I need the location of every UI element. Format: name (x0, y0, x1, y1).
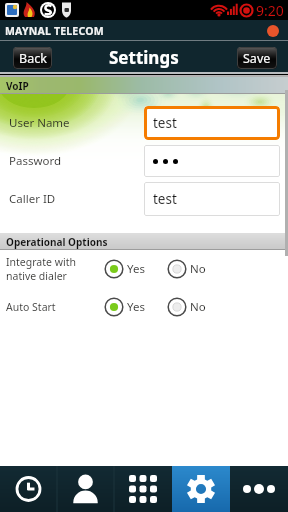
staticText: User Name (9, 115, 70, 131)
button[interactable]: Save (237, 47, 277, 69)
staticText: Settings (109, 46, 179, 69)
button[interactable]: Back (13, 47, 52, 69)
staticText: Password (9, 153, 62, 169)
staticText: MAYNAL TELECOM (5, 24, 104, 38)
staticText: Back (19, 50, 47, 67)
staticText: test (153, 190, 177, 208)
staticText: Yes (127, 299, 145, 315)
button[interactable]: More (230, 466, 288, 512)
staticText: No (190, 299, 206, 315)
button[interactable]: Yes (104, 297, 145, 317)
button[interactable]: Yes (104, 259, 145, 279)
staticText: 9:20 (256, 1, 284, 20)
button[interactable]: No (167, 297, 206, 317)
staticText: Integrate with (6, 255, 76, 269)
button[interactable] (144, 145, 280, 177)
button[interactable]: Settings (172, 466, 230, 512)
staticText: Operational Options (6, 235, 108, 249)
button[interactable]: Keypad (114, 466, 172, 512)
button[interactable]: test (144, 182, 280, 216)
button[interactable]: No (167, 259, 206, 279)
button[interactable]: test (144, 106, 280, 140)
staticText: test (153, 114, 177, 132)
staticText: Auto Start (6, 300, 56, 314)
button[interactable]: Recents (0, 466, 57, 512)
staticText: Save (243, 50, 271, 67)
staticText: VoIP (6, 79, 29, 93)
staticText: No (190, 261, 206, 277)
staticText: native dialer (6, 269, 67, 283)
button[interactable]: Contacts (57, 466, 114, 512)
staticText: Caller ID (9, 191, 56, 207)
staticText: Yes (127, 261, 145, 277)
